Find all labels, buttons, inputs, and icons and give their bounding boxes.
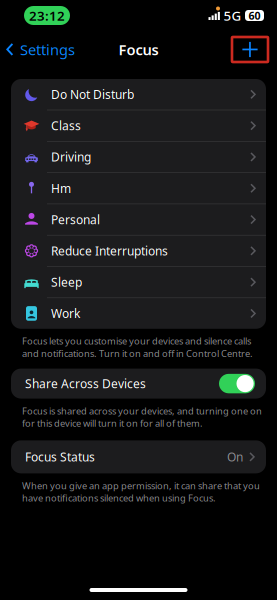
button[interactable]: Work <box>11 298 266 329</box>
staticText: Personal <box>51 212 100 227</box>
staticText: Class <box>51 118 81 134</box>
staticText: Focus <box>118 40 158 59</box>
button[interactable]: Settings <box>0 35 75 64</box>
button[interactable]: Sleep <box>11 267 266 297</box>
staticText: Share Across Devices <box>25 376 146 391</box>
staticText: When you give an app permission, it can … <box>22 479 260 504</box>
button[interactable]: Personal <box>11 204 266 235</box>
button[interactable]: Share Across Devices toggle <box>219 374 255 393</box>
staticText: Focus Status <box>25 449 95 465</box>
staticText: Sleep <box>51 274 82 290</box>
staticText: Hm <box>51 180 71 196</box>
button[interactable]: Class <box>11 110 266 141</box>
staticText: Focus is shared across your devices, and… <box>22 405 262 429</box>
button[interactable]: Focus Status <box>11 440 266 473</box>
staticText: Settings <box>20 40 75 59</box>
button[interactable]: Hm <box>11 173 266 204</box>
staticText: 23:12 <box>29 7 65 24</box>
staticText: Focus lets you customise your devices an… <box>22 335 253 360</box>
button[interactable]: Driving <box>11 142 266 172</box>
staticText: Do Not Disturb <box>51 86 134 102</box>
staticText: Work <box>51 305 80 321</box>
staticText: On <box>227 449 243 465</box>
button[interactable]: Reduce Interruptions <box>11 235 266 266</box>
staticText: Reduce Interruptions <box>51 243 168 259</box>
button[interactable]: Add Focus <box>232 37 277 62</box>
staticText: 5G <box>223 7 241 24</box>
button[interactable]: Do Not Disturb <box>11 79 266 110</box>
staticText: 60 <box>248 8 260 23</box>
staticText: Driving <box>51 149 91 165</box>
